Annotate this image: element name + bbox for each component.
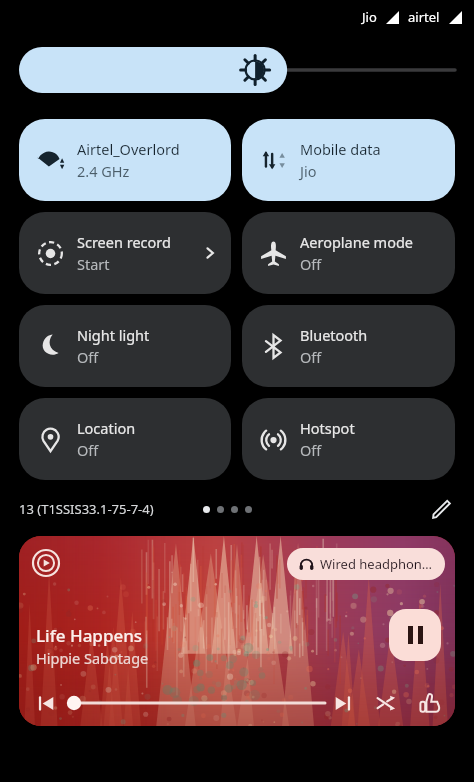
button[interactable]: YouTube Music: [33, 550, 59, 576]
button[interactable]: Wired headphon…: [287, 548, 445, 580]
staticText: Aeroplane mode: [300, 232, 414, 252]
staticText: Start: [77, 254, 110, 274]
button[interactable]: YouTube Music: [19, 536, 455, 726]
button[interactable]: Brightness: [19, 47, 455, 93]
staticText: Airtel_Overlord: [77, 139, 180, 159]
button[interactable]: Pause: [389, 609, 441, 661]
button[interactable]: Edit tiles: [427, 495, 455, 523]
staticText: Screen record: [77, 232, 171, 252]
button[interactable]: Seek bar: [65, 693, 325, 713]
button[interactable]: Shuffle: [371, 688, 401, 718]
staticText: Mobile data: [300, 139, 381, 159]
staticText: airtel: [408, 8, 440, 26]
staticText: Wired headphon…: [320, 555, 433, 573]
button[interactable]: Bluetooth: [242, 305, 455, 387]
button[interactable]: Thumbs up: [415, 688, 445, 718]
staticText: Off: [300, 347, 322, 367]
button[interactable]: Previous: [31, 688, 61, 718]
staticText: Night light: [77, 325, 150, 345]
button[interactable]: Screen record: [19, 212, 231, 294]
staticText: 2.4 GHz: [77, 161, 130, 181]
staticText: Jio: [362, 8, 377, 26]
button[interactable]: Airtel_Overlord: [19, 119, 231, 201]
staticText: Hippie Sabotage: [36, 648, 149, 668]
button[interactable]: Night light: [19, 305, 231, 387]
staticText: Off: [300, 440, 322, 460]
button[interactable]: Next: [327, 688, 357, 718]
staticText: Off: [77, 347, 99, 367]
staticText: Off: [77, 440, 99, 460]
button[interactable]: Location: [19, 398, 231, 480]
staticText: Off: [300, 254, 322, 274]
staticText: Location: [77, 418, 136, 438]
button[interactable]: Mobile data: [242, 119, 455, 201]
staticText: Jio: [300, 161, 317, 181]
staticText: Hotspot: [300, 418, 355, 438]
staticText: Life Happens: [36, 624, 143, 647]
button[interactable]: Aeroplane mode: [242, 212, 455, 294]
staticText: 13 (T1SSIS33.1-75-7-4): [19, 500, 154, 518]
staticText: Bluetooth: [300, 325, 368, 345]
button[interactable]: Hotspot: [242, 398, 455, 480]
